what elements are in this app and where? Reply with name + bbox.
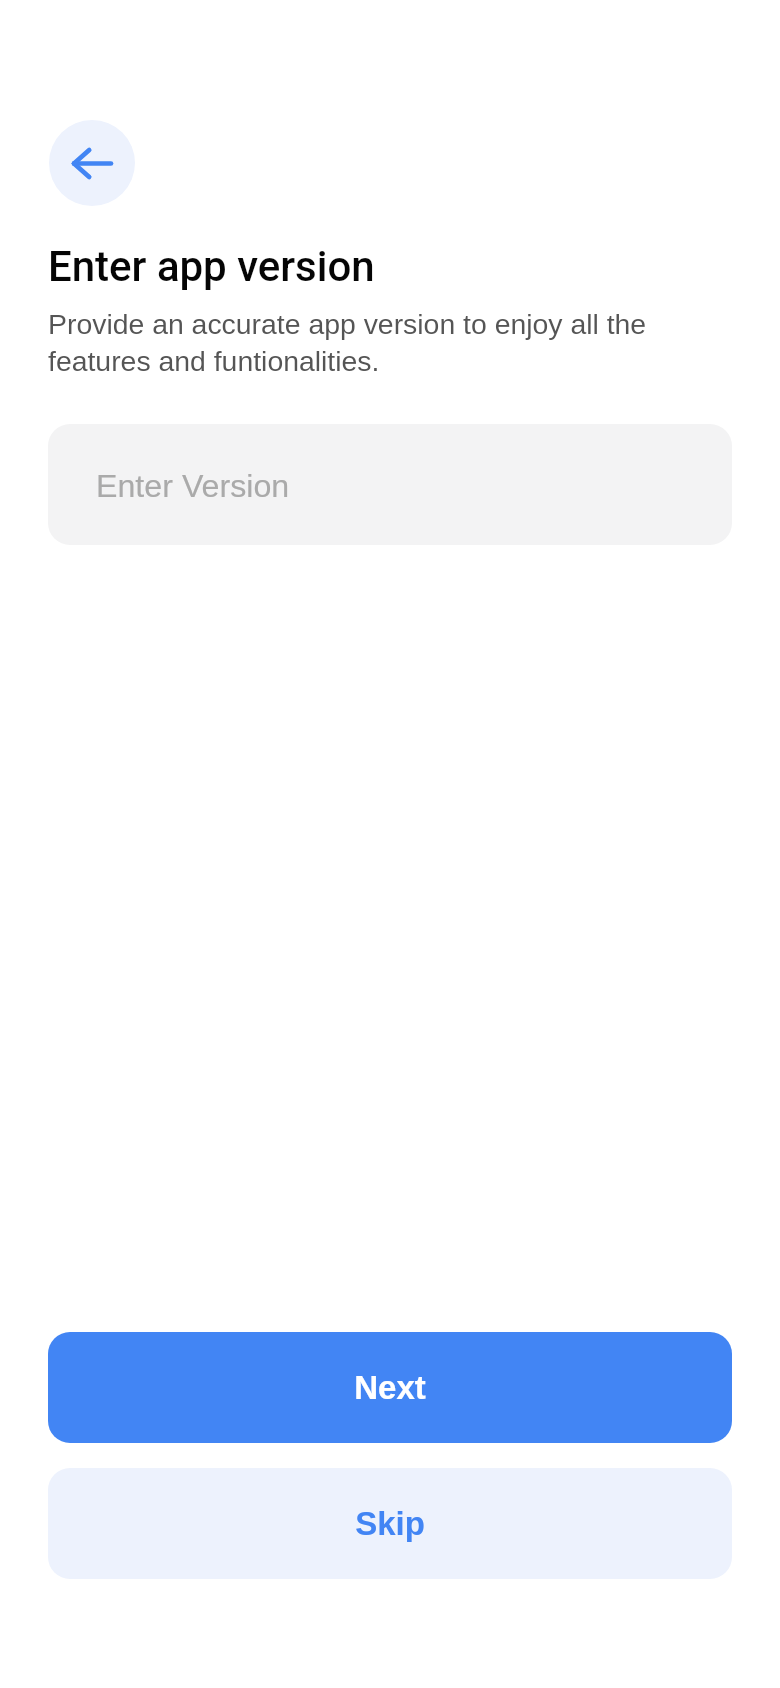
staticText: Next <box>354 1369 426 1406</box>
staticText: Enter Version <box>96 468 290 504</box>
staticText: Provide an accurate app version to enjoy… <box>48 308 740 377</box>
button[interactable]: Enter Version <box>48 424 732 545</box>
staticText: Skip <box>355 1505 425 1542</box>
button[interactable]: Back <box>49 120 135 206</box>
button[interactable]: Next <box>48 1332 732 1443</box>
staticText: Enter app version <box>48 242 375 291</box>
button[interactable]: Skip <box>48 1468 732 1579</box>
